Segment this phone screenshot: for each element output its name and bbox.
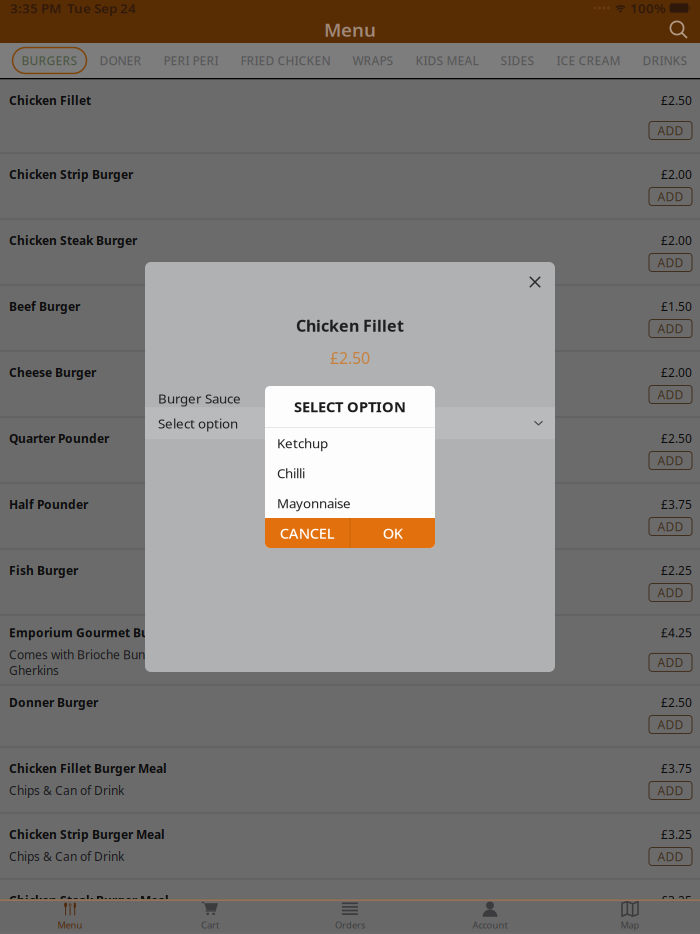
button[interactable]: ADD: [649, 319, 692, 337]
button[interactable]: ADD: [649, 583, 692, 601]
staticText: £2.00: [661, 232, 692, 248]
staticText: SIDES: [500, 52, 534, 68]
staticText: ADD: [657, 654, 683, 670]
button[interactable]: PERI PERI: [154, 47, 227, 73]
button[interactable]: Chilli: [265, 458, 435, 488]
staticText: ADD: [657, 584, 683, 600]
staticText: ADD: [657, 122, 683, 138]
staticText: DRINKS: [642, 52, 687, 68]
staticText: Chips & Can of Drink: [9, 782, 124, 798]
staticText: ICE CREAM: [556, 52, 620, 68]
staticText: Chicken Steak Burger Meal: [9, 892, 169, 908]
staticText: ADD: [657, 716, 683, 732]
button[interactable]: BURGERS: [12, 47, 86, 73]
staticText: £2.50: [330, 347, 370, 368]
staticText: Chicken Fillet Burger Meal: [9, 760, 167, 776]
staticText: DONER: [99, 52, 141, 68]
staticText: £2.00: [661, 364, 692, 380]
staticText: ADD: [657, 320, 683, 336]
staticText: Beef Burger: [9, 298, 80, 314]
staticText: Chicken Strip Burger Meal: [9, 826, 165, 842]
staticText: Chilli: [277, 464, 305, 482]
staticText: CANCEL: [280, 523, 335, 543]
button[interactable]: DONER: [90, 47, 150, 73]
staticText: Tue Sep 24: [61, 0, 136, 17]
button[interactable]: SIDES: [491, 47, 543, 73]
staticText: £3.25: [661, 826, 692, 842]
button[interactable]: WRAPS: [343, 47, 402, 73]
button[interactable]: ICE CREAM: [547, 47, 629, 73]
button[interactable]: ADD: [649, 781, 692, 799]
button[interactable]: Search: [663, 16, 694, 43]
staticText: Orders: [335, 919, 365, 931]
button[interactable]: CANCEL: [265, 518, 349, 548]
staticText: Quarter Pounder: [9, 430, 109, 446]
button[interactable]: ADD: [649, 253, 692, 271]
button[interactable]: ADD: [649, 715, 692, 733]
button[interactable]: ADD: [649, 847, 692, 865]
button[interactable]: ADD: [649, 517, 692, 535]
staticText: £2.25: [661, 562, 692, 578]
button[interactable]: Ketchup: [265, 428, 435, 458]
staticText: BURGERS: [21, 52, 77, 68]
button[interactable]: Cart: [140, 898, 280, 933]
staticText: £3.25: [661, 892, 692, 908]
staticText: Chicken Steak Burger: [9, 232, 137, 248]
staticText: SELECT OPTION: [294, 397, 406, 416]
staticText: ADD: [657, 188, 683, 204]
button[interactable]: Map: [560, 898, 700, 933]
staticText: ADD: [657, 254, 683, 270]
staticText: Select option: [158, 414, 238, 432]
staticText: Comes with Brioche Bun, Lightly Salted G…: [9, 646, 225, 678]
staticText: Chips & Can of Drink: [9, 848, 124, 864]
staticText: Chips & Can of Drink: [9, 914, 124, 930]
button[interactable]: KIDS MEAL: [406, 47, 487, 73]
staticText: Emporium Gourmet Burger: [9, 625, 174, 640]
button[interactable]: Close: [522, 269, 548, 295]
staticText: Burger Sauce: [158, 389, 241, 407]
button[interactable]: ADD: [649, 121, 692, 139]
staticText: Mayonnaise: [277, 494, 351, 512]
staticText: ADD: [657, 452, 683, 468]
button[interactable]: ADD: [649, 653, 692, 671]
staticText: £3.75: [661, 496, 692, 512]
button[interactable]: OK: [350, 518, 435, 548]
button[interactable]: ADD: [649, 187, 692, 205]
button[interactable]: ADD: [649, 385, 692, 403]
staticText: £1.50: [661, 298, 692, 314]
staticText: Donner Burger: [9, 694, 98, 710]
button[interactable]: DRINKS: [633, 47, 696, 73]
button[interactable]: FRIED CHICKEN: [231, 47, 339, 73]
staticText: Half Pounder: [9, 496, 88, 512]
staticText: £3.75: [661, 760, 692, 776]
staticText: £2.50: [661, 430, 692, 446]
button[interactable]: Menu: [0, 898, 140, 933]
staticText: ADD: [657, 518, 683, 534]
staticText: Menu: [57, 919, 82, 931]
staticText: ADD: [657, 386, 683, 402]
staticText: PERI PERI: [163, 52, 218, 68]
staticText: Map: [620, 919, 639, 931]
staticText: Fish Burger: [9, 562, 78, 578]
staticText: £2.50: [661, 92, 692, 108]
button[interactable]: Account: [420, 898, 560, 933]
staticText: Cheese Burger: [9, 364, 96, 380]
staticText: KIDS MEAL: [415, 52, 478, 68]
button[interactable]: Orders: [280, 898, 420, 933]
staticText: Ketchup: [277, 434, 328, 452]
staticText: Menu: [324, 17, 376, 42]
staticText: Account: [472, 919, 507, 931]
button[interactable]: Mayonnaise: [265, 488, 435, 518]
staticText: £2.50: [661, 694, 692, 710]
staticText: FRIED CHICKEN: [240, 52, 330, 68]
staticText: 100%: [630, 0, 666, 17]
button[interactable]: ADD: [649, 451, 692, 469]
staticText: Chicken Strip Burger: [9, 166, 133, 182]
staticText: Chicken Fillet: [9, 92, 91, 108]
staticText: Chicken Fillet: [296, 315, 404, 336]
staticText: 3:35 PM: [10, 0, 61, 17]
staticText: £4.25: [661, 625, 692, 640]
staticText: Cart: [201, 919, 219, 931]
